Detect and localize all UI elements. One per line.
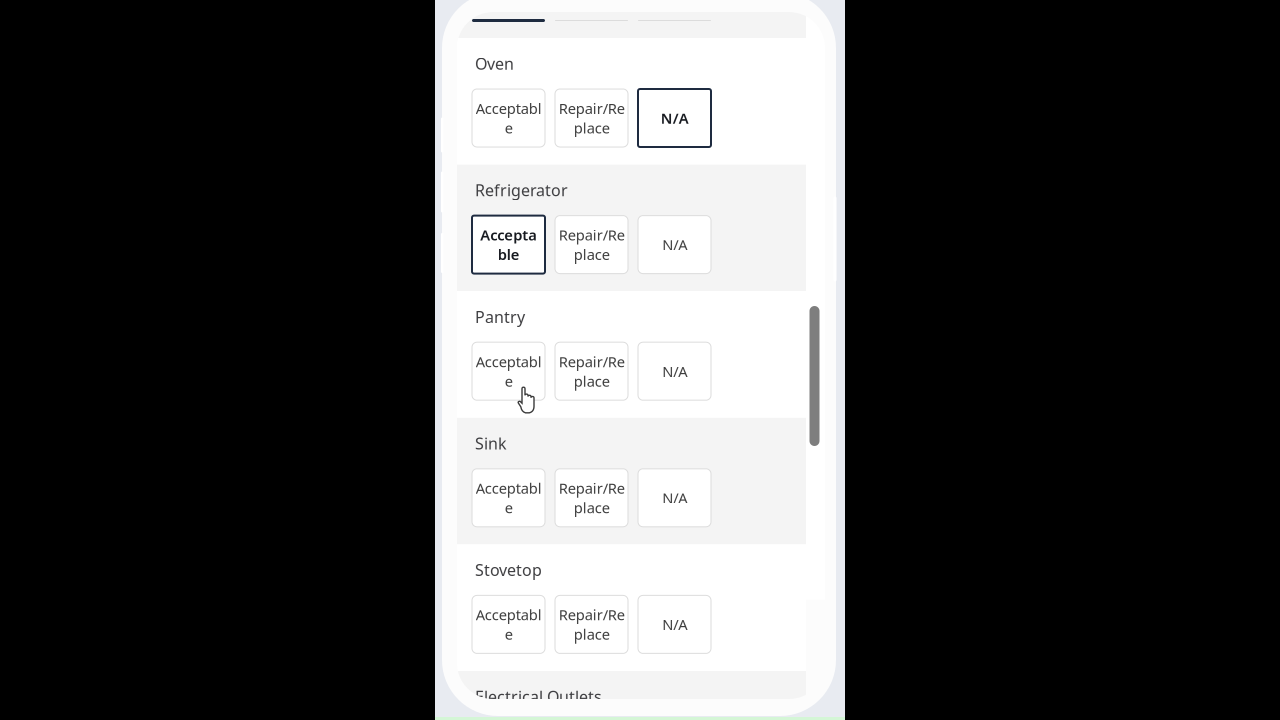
button[interactable]: Acceptable [472,469,545,527]
button[interactable]: Repair/Replace [555,216,628,274]
staticText: N/A [660,108,688,128]
staticText: Stovetop [475,559,542,580]
staticText: Repair/Re place [558,352,624,391]
button[interactable]: N/A [638,216,711,274]
button[interactable]: Repair/Replace [555,469,628,527]
staticText: Acceptabl e [475,478,541,517]
staticText: Repair/Re place [558,478,624,517]
button[interactable]: Acceptable [472,342,545,400]
button[interactable]: Repair/Replace [555,595,628,653]
button[interactable]: N/A [638,595,711,653]
staticText: N/A [662,235,687,254]
staticText: Acceptabl e [475,98,541,137]
button[interactable]: Repair/Replace [555,89,628,147]
button[interactable]: N/A [638,342,711,400]
staticText: Repair/Re place [558,98,624,137]
staticText: N/A [662,361,687,381]
staticText: Pantry [475,306,525,327]
staticText: Refrigerator [475,179,568,201]
staticText: Repair/Re place [558,605,624,644]
staticText: Acceptabl e [475,352,541,391]
button[interactable]: Repair/Replace [555,342,628,400]
button[interactable]: Acceptable [472,595,545,653]
staticText: Sink [475,433,507,454]
staticText: Repair/Re place [558,225,624,264]
button[interactable]: N/A [638,89,711,147]
staticText: Oven [475,53,514,74]
button[interactable]: Acceptable [472,216,545,274]
staticText: Accepta ble [480,225,537,264]
staticText: N/A [662,615,687,634]
button[interactable]: Acceptable [472,89,545,147]
staticText: Electrical Outlets [475,686,602,707]
staticText: Acceptabl e [475,605,541,644]
staticText: N/A [662,488,687,508]
button[interactable]: N/A [638,469,711,527]
